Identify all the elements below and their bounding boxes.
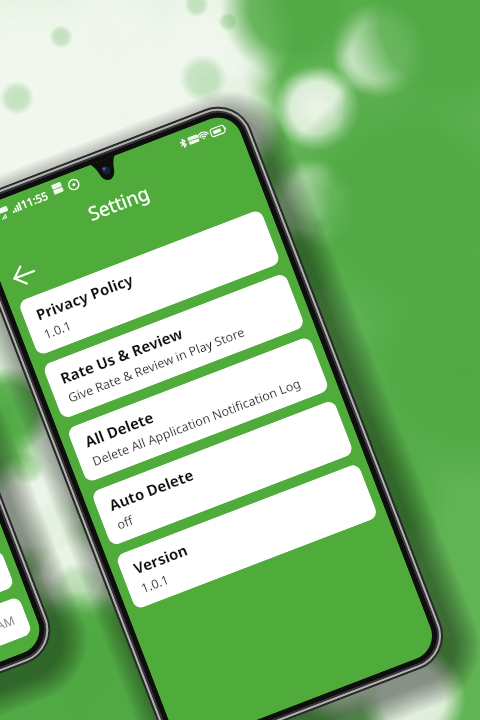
button[interactable]: 11:54 AM <box>0 549 15 658</box>
staticText: Auto Delete <box>106 464 196 515</box>
button[interactable]: Privacy Policy <box>18 209 281 356</box>
button[interactable]: All Delete <box>66 336 330 483</box>
staticText: 11:55 <box>18 187 51 212</box>
staticText: Give Rate & Review in Play Store <box>66 323 247 406</box>
button[interactable]: Auto Delete <box>91 399 354 547</box>
staticText: Delete All Application Notification Log <box>90 375 303 470</box>
staticText: off <box>114 512 136 534</box>
button[interactable]: Version <box>115 463 379 610</box>
staticText: 1.0.1 <box>41 317 74 343</box>
button[interactable]: Rate Us & Review <box>42 272 305 420</box>
staticText: Version <box>130 539 191 578</box>
staticText: Setting <box>84 179 153 227</box>
staticText: 11:54 AM <box>0 611 17 645</box>
staticText: Rate Us & Review <box>57 323 186 388</box>
staticText: Privacy Policy <box>33 269 136 324</box>
button[interactable]: 11:54 AM <box>0 596 33 705</box>
staticText: 1.0.1 <box>139 571 172 597</box>
button[interactable]: Back <box>2 253 46 297</box>
staticText: All Delete <box>82 407 157 451</box>
